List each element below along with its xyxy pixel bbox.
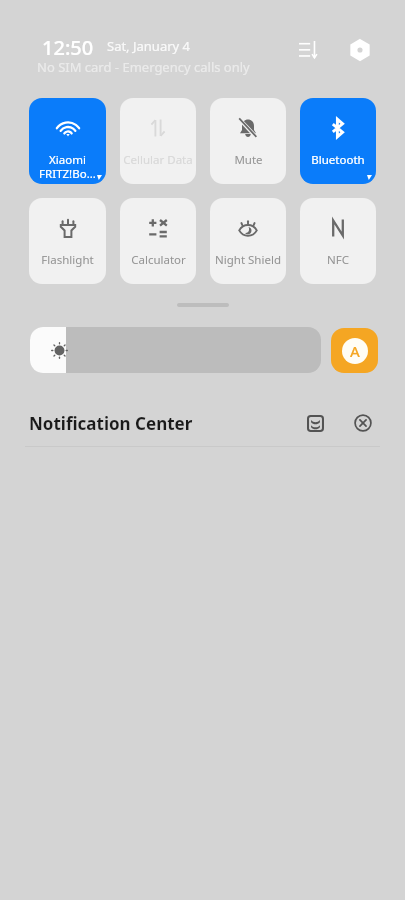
button[interactable]: Bluetooth [300, 98, 376, 184]
staticText: Notification Center [29, 412, 193, 435]
staticText: Flashlight [41, 252, 94, 268]
staticText: Night Shield [215, 252, 281, 268]
button[interactable]: Xiaomi FRITZ!Bo... [29, 98, 106, 184]
staticText: Xiaomi FRITZ!Bo... [39, 152, 96, 181]
button[interactable]: Auto brightness [331, 328, 378, 373]
staticText: Bluetooth [311, 152, 365, 168]
staticText: NFC [327, 252, 349, 268]
button[interactable]: Night Shield [210, 198, 286, 284]
button[interactable]: NFC [300, 198, 376, 284]
button[interactable]: Brightness [30, 327, 321, 373]
button[interactable]: Calculator [120, 198, 196, 284]
button[interactable]: Clear all notifications [350, 410, 376, 436]
staticText: Sat, January 4 [107, 37, 191, 55]
button[interactable]: Sort notifications [293, 35, 322, 64]
staticText: Calculator [131, 252, 186, 268]
button[interactable]: Settings [346, 36, 374, 64]
button[interactable]: Mute [210, 98, 286, 184]
staticText: A [350, 341, 360, 361]
staticText: Mute [234, 152, 263, 168]
staticText: 12:50 [42, 34, 94, 61]
button[interactable]: Flashlight [29, 198, 106, 284]
button[interactable]: Cellular Data [120, 98, 196, 184]
button[interactable]: Notification settings [302, 410, 328, 436]
staticText: No SIM card - Emergency calls only [37, 58, 250, 76]
staticText: Cellular Data [123, 152, 193, 168]
